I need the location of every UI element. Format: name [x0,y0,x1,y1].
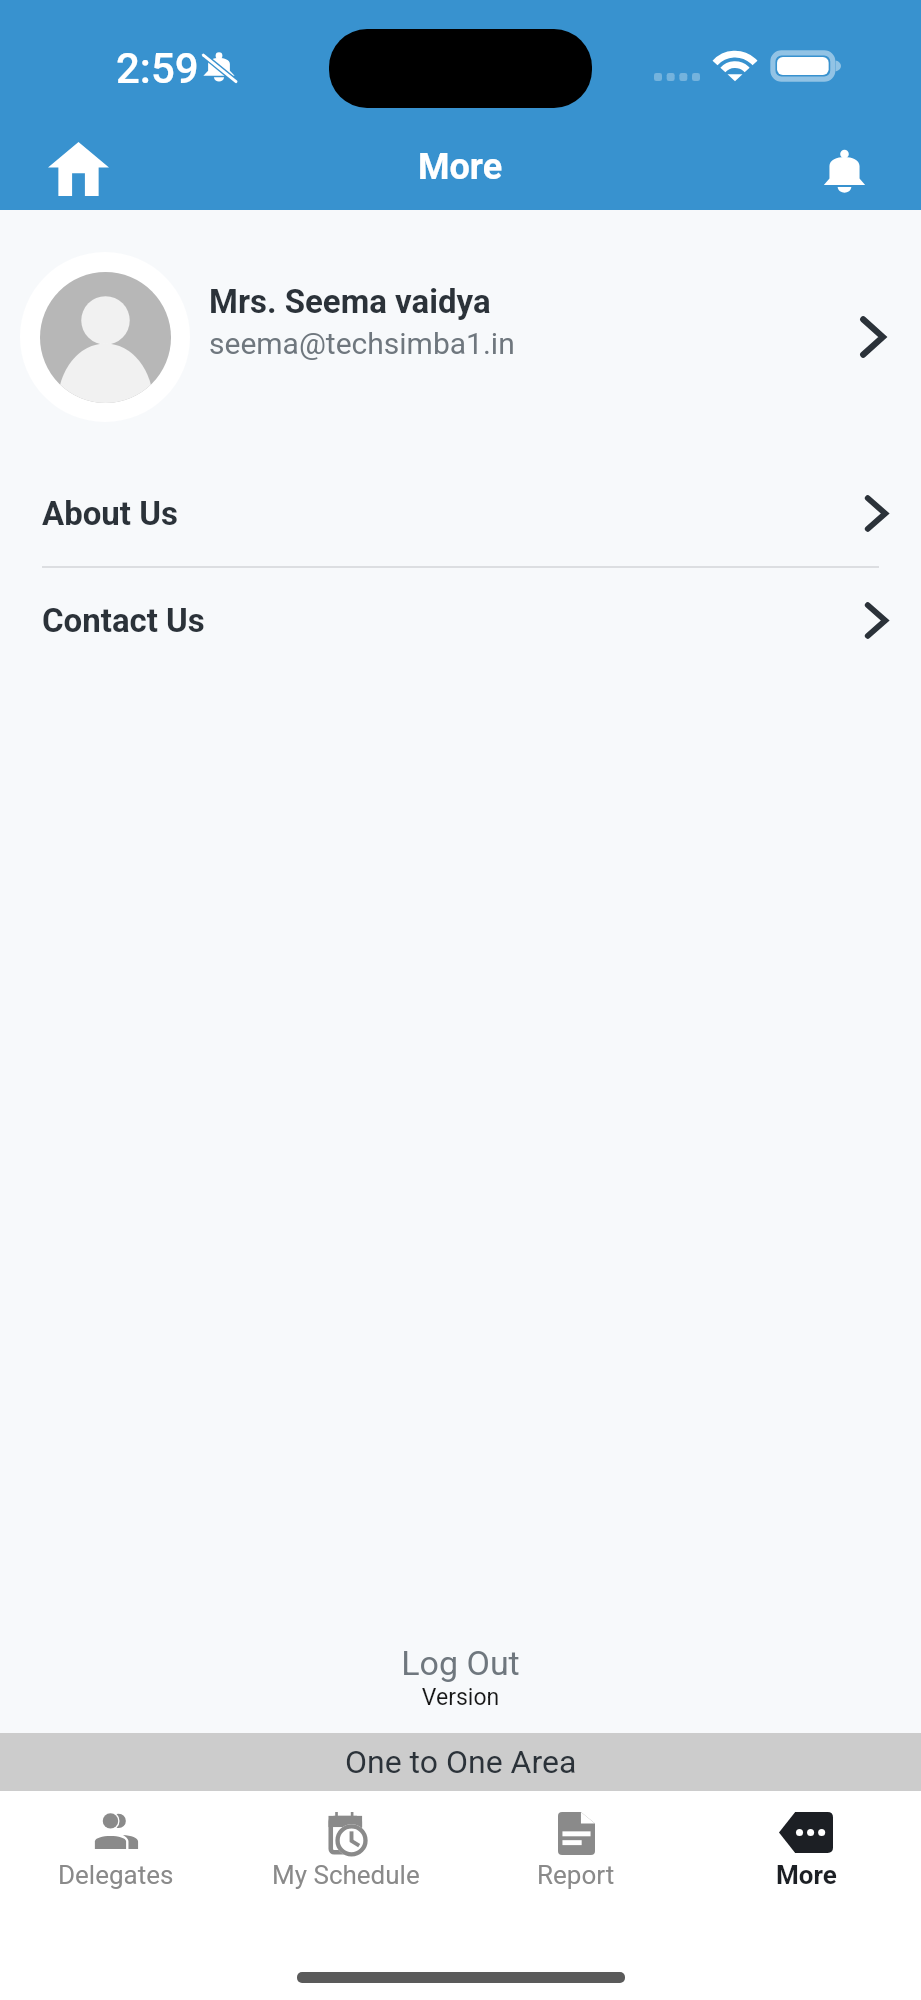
staticText: 2:59 [116,44,199,93]
staticText: Version [0,1684,921,1711]
button[interactable]: Mrs. Seema vaidya [0,231,921,443]
button[interactable]: One to One Area [0,1733,921,1791]
staticText: One to One Area [345,1743,577,1781]
button[interactable]: Log Out [0,1643,921,1683]
staticText: Report [537,1860,615,1890]
staticText: Delegates [58,1860,174,1890]
button[interactable]: More [691,1791,921,1911]
button[interactable]: Report [461,1791,691,1911]
button[interactable]: Notifications [796,122,892,210]
staticText: More [418,146,503,188]
button[interactable]: Delegates [0,1791,231,1911]
staticText: More [776,1860,837,1890]
button[interactable]: Home [30,122,126,210]
staticText: seema@techsimba1.in [209,326,515,361]
button[interactable]: My Schedule [231,1791,461,1911]
button[interactable]: Contact Us [0,568,921,673]
staticText: About Us [42,494,178,533]
button[interactable]: About Us [0,461,921,566]
staticText: My Schedule [272,1860,420,1890]
staticText: Contact Us [42,601,205,640]
staticText: Mrs. Seema vaidya [209,282,491,321]
